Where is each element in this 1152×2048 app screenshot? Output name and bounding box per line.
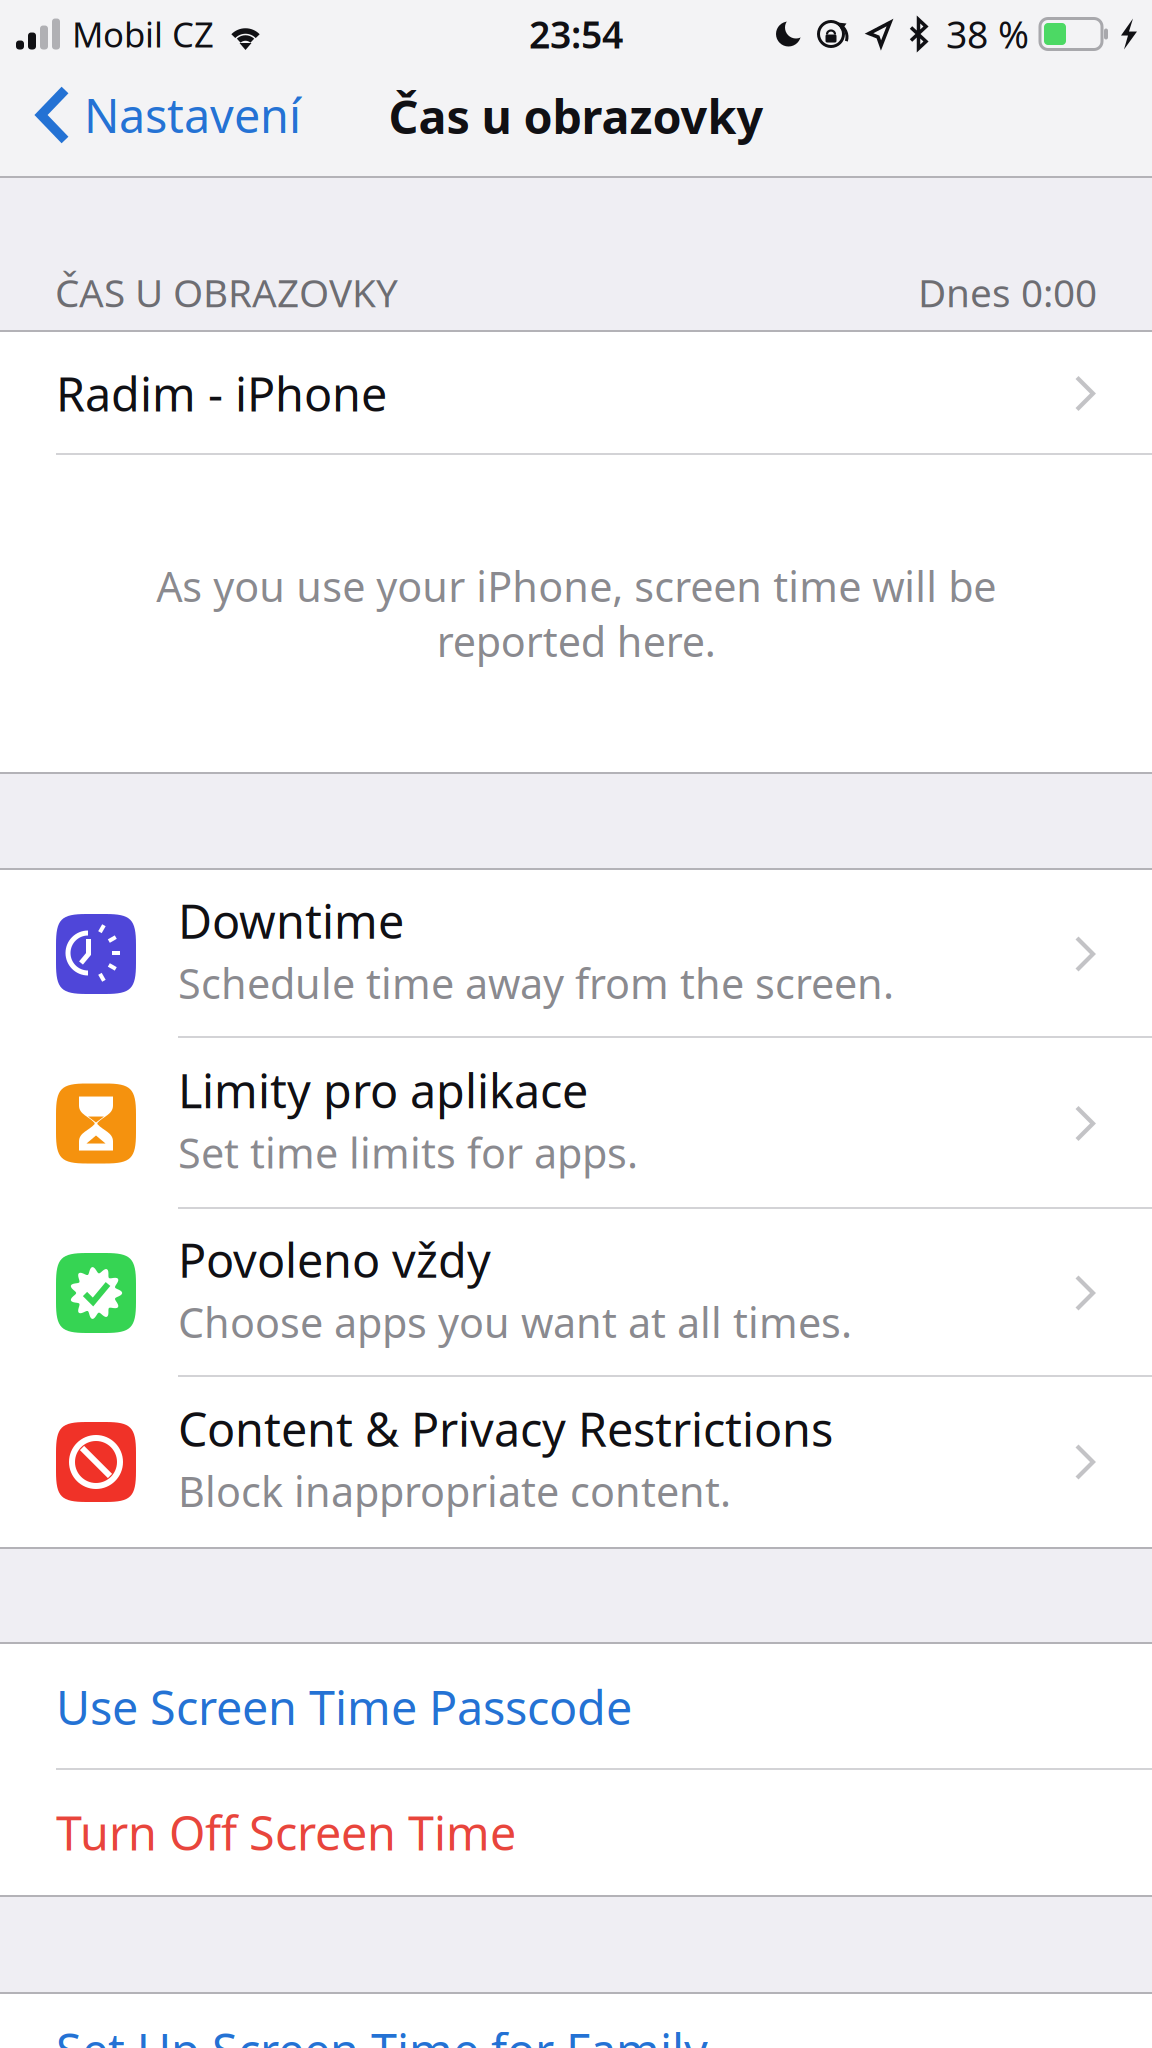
staticText: Schedule time away from the screen. [178, 955, 894, 1010]
staticText: Choose apps you want at all times. [178, 1294, 852, 1349]
button[interactable]: Limity pro aplikace [0, 1038, 1152, 1209]
button[interactable]: Use Screen Time Passcode [0, 1644, 1152, 1770]
staticText: As you use your iPhone, screen time will… [156, 559, 996, 668]
button[interactable]: Povoleno vždy [0, 1209, 1152, 1377]
button[interactable]: Nastavení [0, 68, 317, 178]
staticText: Turn Off Screen Time [56, 1801, 516, 1863]
staticText: 38 % [946, 9, 1029, 59]
staticText: Set time limits for apps. [178, 1125, 638, 1180]
staticText: 23:54 [529, 9, 623, 59]
button[interactable]: Set Up Screen Time for Family [0, 1994, 1152, 2048]
button[interactable]: Content & Privacy Restrictions [0, 1377, 1152, 1547]
staticText: Čas u obrazovky [388, 85, 763, 147]
staticText: Nastavení [84, 84, 301, 146]
button[interactable]: Downtime [0, 870, 1152, 1038]
staticText: Set Up Screen Time for Family [56, 2019, 708, 2048]
staticText: Povoleno vždy [178, 1229, 491, 1291]
staticText: Block inappropriate content. [178, 1463, 731, 1518]
button[interactable]: Turn Off Screen Time [0, 1770, 1152, 1895]
button[interactable]: Radim - iPhone [0, 332, 1152, 455]
staticText: Limity pro aplikace [178, 1059, 588, 1121]
staticText: Downtime [178, 890, 404, 952]
staticText: Mobil CZ [72, 11, 214, 57]
staticText: ČAS U OBRAZOVKY [55, 267, 398, 318]
staticText: Radim - iPhone [56, 362, 387, 424]
staticText: Content & Privacy Restrictions [178, 1398, 833, 1460]
staticText: Dnes 0:00 [918, 267, 1097, 318]
staticText: Use Screen Time Passcode [56, 1676, 632, 1738]
